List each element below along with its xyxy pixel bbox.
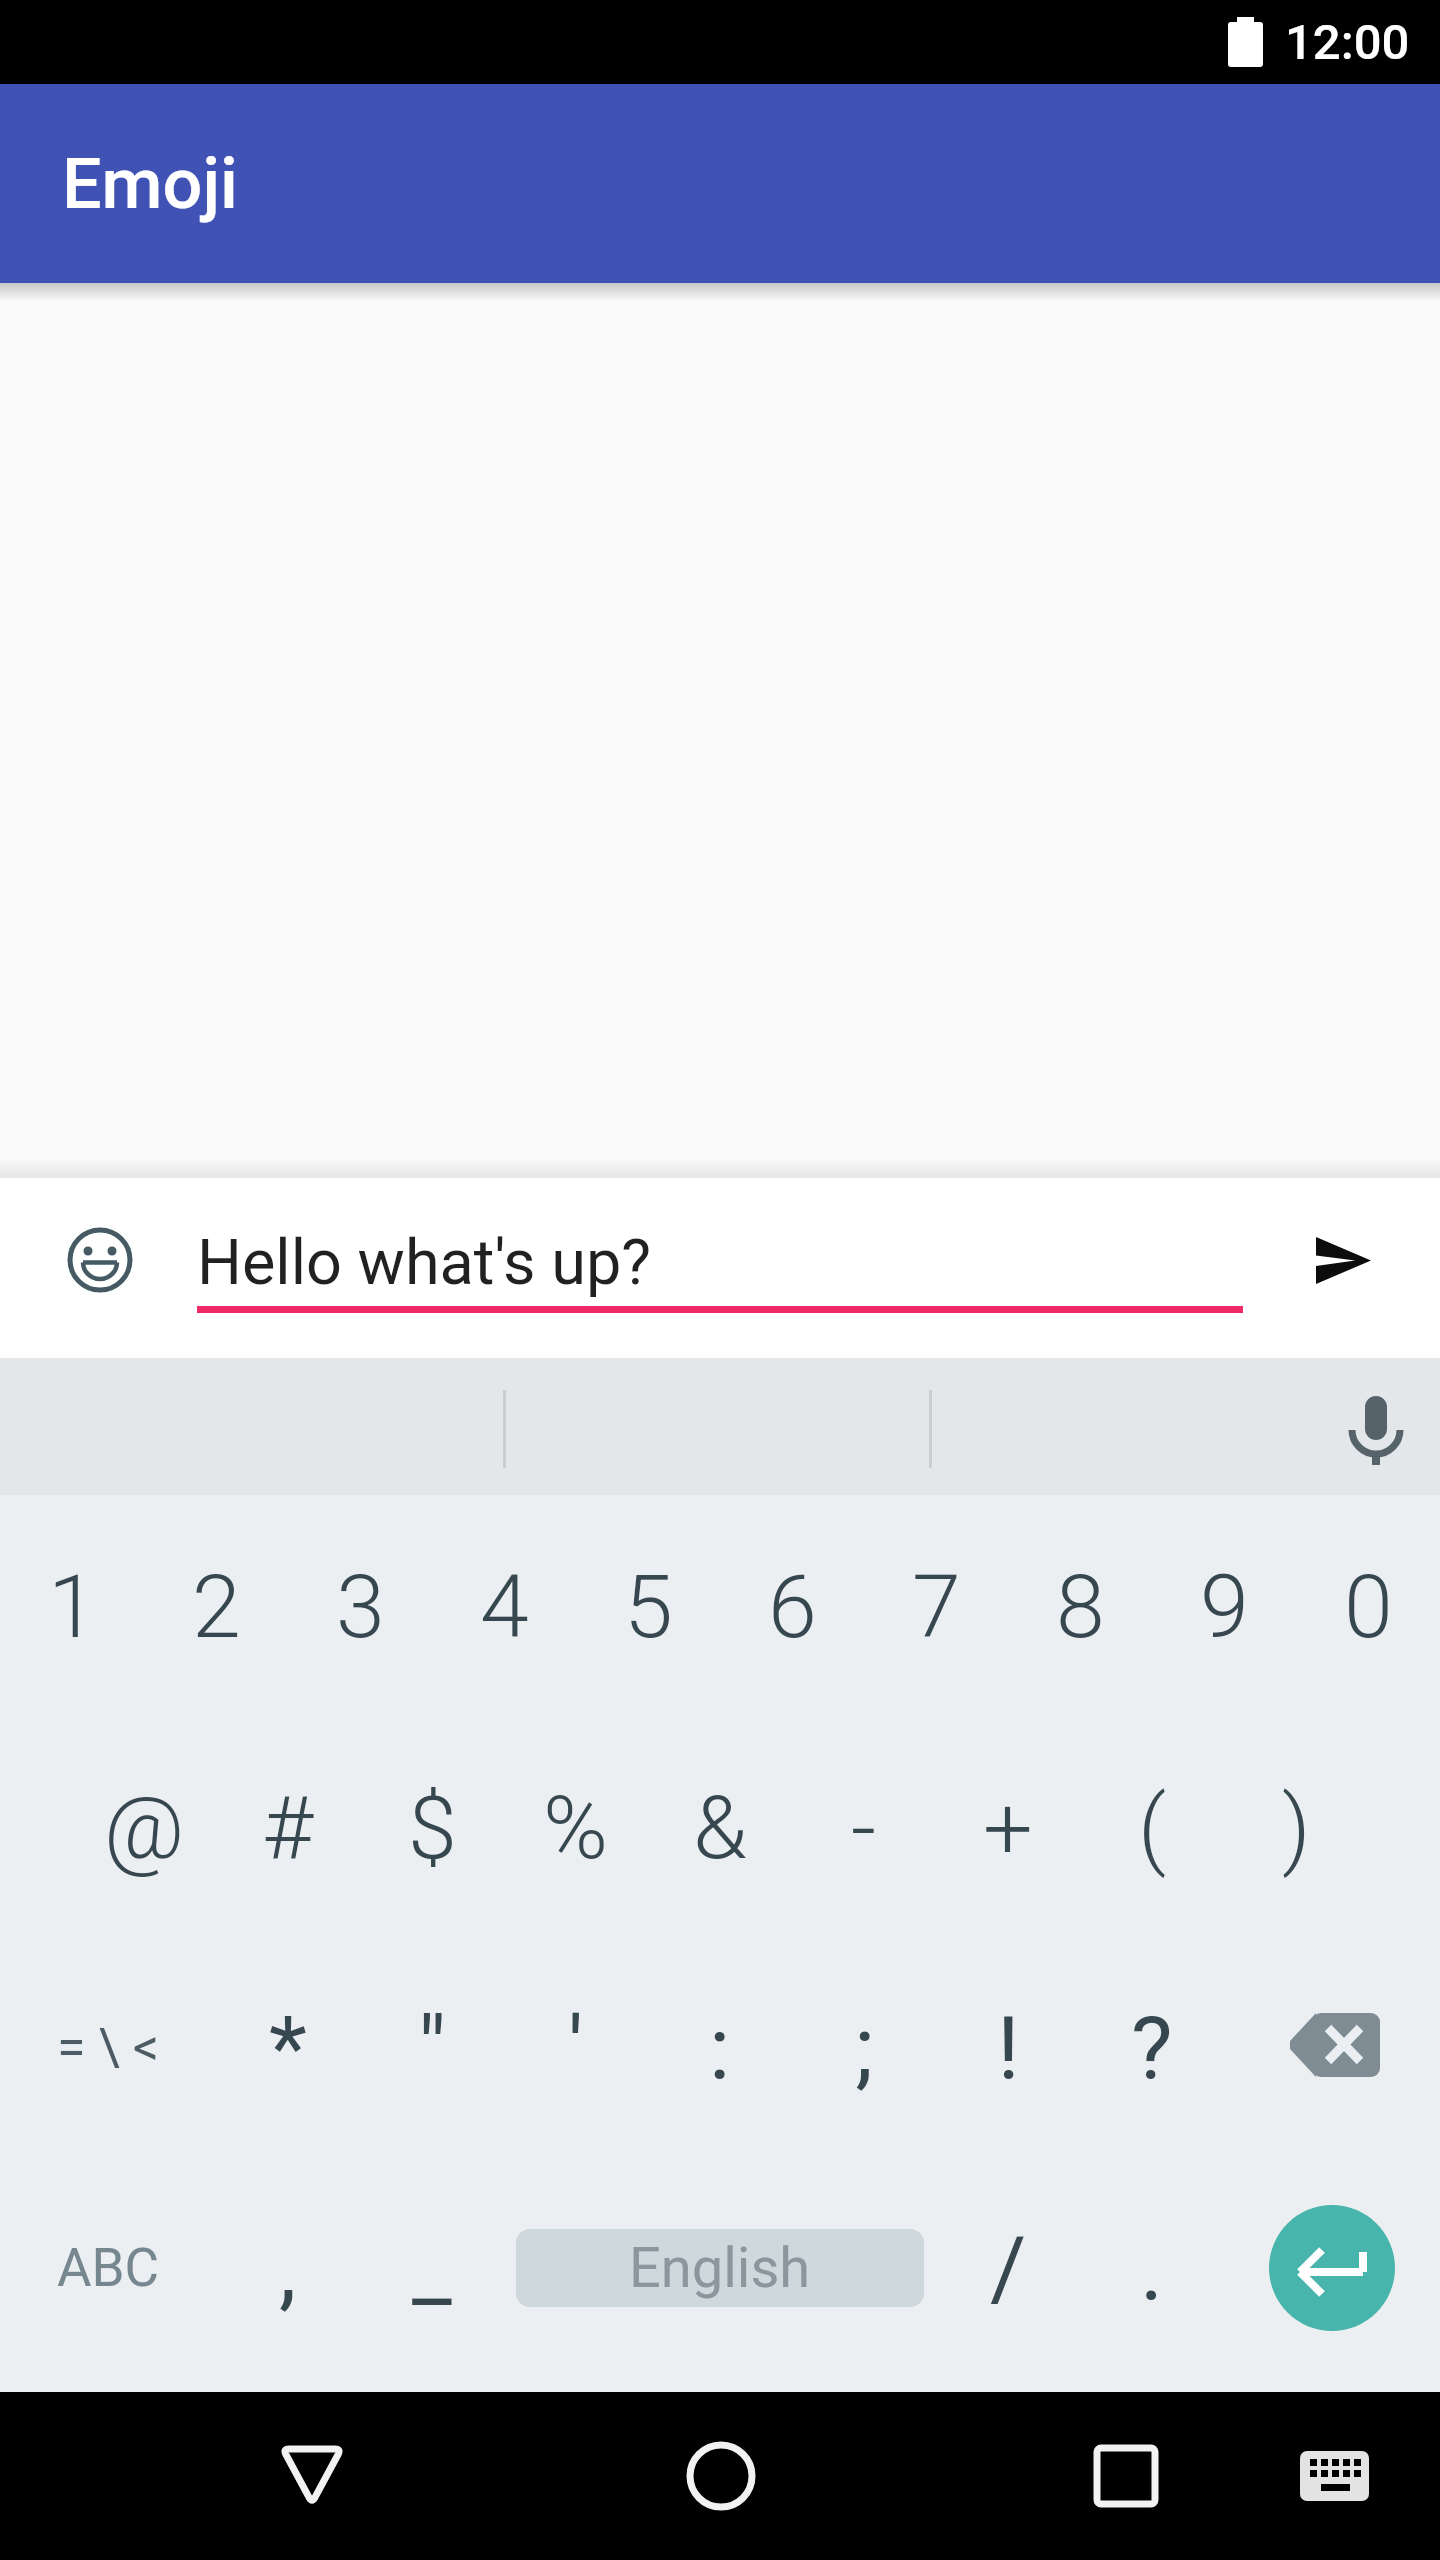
staticText: @ [104,1776,185,1879]
button[interactable]: 6 [720,1496,864,1716]
button[interactable]: ( [1080,1717,1224,1937]
staticText: ? [1131,1996,1173,2099]
staticText: 7 [912,1555,961,1658]
button[interactable] [1224,2158,1440,2378]
button[interactable]: + [936,1717,1080,1937]
button[interactable]: - [792,1717,936,1937]
staticText: $ [408,1776,457,1879]
staticText: 5 [624,1555,673,1658]
staticText: % [543,1776,609,1879]
staticText: Hello what's up? [197,1226,652,1300]
button[interactable]: & [648,1717,792,1937]
staticText: ' [568,1996,584,2099]
button[interactable]: " [360,1937,504,2157]
button[interactable] [1288,1226,1400,1322]
staticText: , [279,2217,297,2320]
button[interactable]: 8 [1008,1496,1152,1716]
staticText: _ [412,2217,452,2320]
staticText: 9 [1200,1555,1249,1658]
button[interactable]: * [216,1937,360,2157]
staticText: = \ < [57,2017,160,2078]
button[interactable] [1274,2416,1394,2536]
staticText: Emoji [62,143,238,225]
staticText: 3 [336,1555,385,1658]
button[interactable]: ' [504,1937,648,2157]
button[interactable]: . [1080,2158,1224,2378]
staticText: 4 [480,1555,529,1658]
button[interactable]: : [648,1937,792,2157]
staticText: ABC [57,2237,160,2299]
button[interactable]: ! [936,1937,1080,2157]
staticText: : [709,1996,731,2099]
staticText: 0 [1344,1555,1393,1658]
button[interactable]: 9 [1152,1496,1296,1716]
button[interactable] [1224,1937,1440,2157]
staticText: - [851,1776,877,1879]
staticText: 1 [48,1555,97,1658]
staticText: ) [1282,1776,1311,1879]
button[interactable]: Hello what's up? [197,1178,1243,1358]
button[interactable] [1066,2416,1186,2536]
staticText: * [269,1996,307,2099]
staticText: English [629,2235,811,2301]
button[interactable]: ; [792,1937,936,2157]
button[interactable]: 7 [864,1496,1008,1716]
button[interactable]: 4 [432,1496,576,1716]
staticText: & [693,1776,748,1879]
button[interactable]: 3 [288,1496,432,1716]
button[interactable] [52,1212,148,1308]
button[interactable]: 0 [1296,1496,1440,1716]
staticText: # [262,1776,314,1879]
staticText: / [990,2217,1027,2320]
staticText: ; [855,1996,874,2099]
button[interactable]: ABC [0,2158,216,2378]
button[interactable]: 5 [576,1496,720,1716]
button[interactable]: % [504,1717,648,1937]
button[interactable]: _ [360,2158,504,2378]
button[interactable]: ) [1224,1717,1368,1937]
button[interactable]: ? [1080,1937,1224,2157]
button[interactable] [1318,1378,1434,1498]
button[interactable]: , [216,2158,360,2378]
button[interactable] [661,2416,781,2536]
button[interactable] [252,2416,372,2536]
staticText: + [983,1776,1033,1879]
button[interactable]: 1 [0,1496,144,1716]
staticText: 2 [192,1555,241,1658]
button[interactable]: English [516,2229,924,2307]
staticText: ! [997,1996,1020,2099]
button[interactable]: 2 [144,1496,288,1716]
staticText: . [1140,2217,1164,2320]
button[interactable]: @ [72,1717,216,1937]
button[interactable]: $ [360,1717,504,1937]
button[interactable]: # [216,1717,360,1937]
staticText: " [418,1996,447,2099]
button[interactable]: = \ < [0,1937,216,2157]
button[interactable]: / [936,2158,1080,2378]
staticText: 8 [1056,1555,1105,1658]
staticText: 6 [768,1555,817,1658]
staticText: ( [1138,1776,1167,1879]
staticText: 12:00 [1285,14,1410,71]
